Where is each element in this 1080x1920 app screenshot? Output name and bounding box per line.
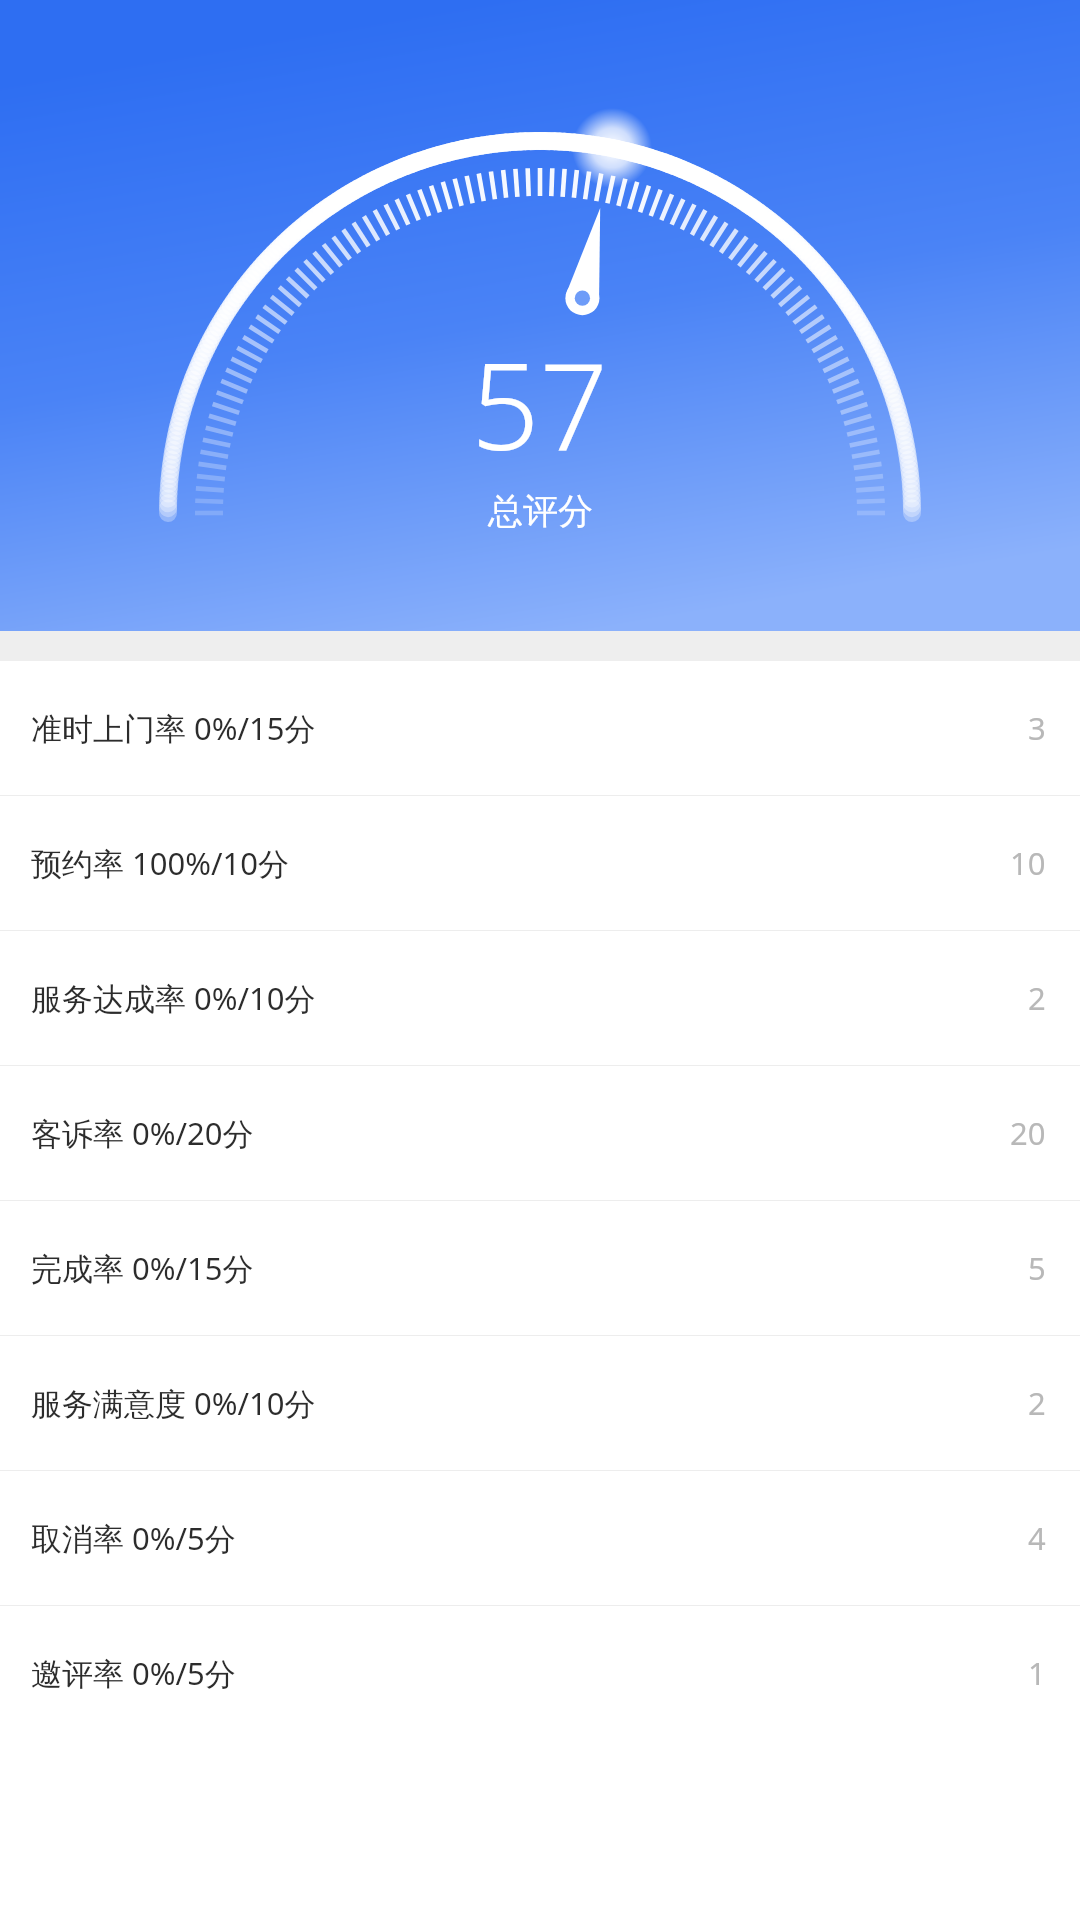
staticText: 取消率 0%/5分	[31, 1517, 236, 1559]
button[interactable]: 服务达成率 0%/10分	[0, 931, 1080, 1065]
staticText: 5	[1028, 1247, 1046, 1289]
button[interactable]: 准时上门率 0%/15分	[0, 661, 1080, 795]
button[interactable]: 邀评率 0%/5分	[0, 1606, 1080, 1740]
staticText: 邀评率 0%/5分	[31, 1652, 236, 1694]
staticText: 完成率 0%/15分	[31, 1247, 254, 1289]
staticText: 4	[1028, 1517, 1046, 1559]
staticText: 总评分	[488, 489, 593, 533]
staticText: 2	[1028, 977, 1046, 1019]
staticText: 服务达成率 0%/10分	[31, 977, 316, 1019]
button[interactable]: 客诉率 0%/20分	[0, 1066, 1080, 1200]
staticText: 客诉率 0%/20分	[31, 1112, 254, 1154]
button[interactable]: 服务满意度 0%/10分	[0, 1336, 1080, 1470]
staticText: 预约率 100%/10分	[31, 842, 290, 884]
button[interactable]: 预约率 100%/10分	[0, 796, 1080, 930]
staticText: 服务满意度 0%/10分	[31, 1382, 316, 1424]
staticText: 57	[471, 322, 609, 485]
staticText: 1	[1028, 1652, 1046, 1694]
staticText: 准时上门率 0%/15分	[31, 707, 316, 749]
staticText: 20	[1010, 1112, 1046, 1154]
staticText: 3	[1028, 707, 1046, 749]
button[interactable]: 完成率 0%/15分	[0, 1201, 1080, 1335]
staticText: 2	[1028, 1382, 1046, 1424]
staticText: 10	[1010, 842, 1046, 884]
button[interactable]: 取消率 0%/5分	[0, 1471, 1080, 1605]
